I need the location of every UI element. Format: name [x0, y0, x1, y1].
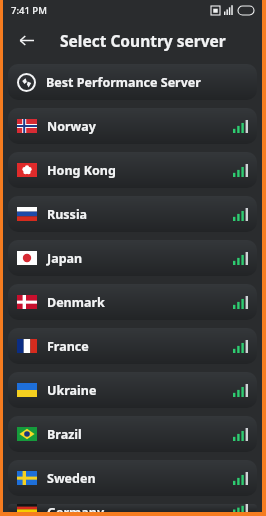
button[interactable]: Back: [13, 27, 39, 53]
button[interactable]: Russia: [8, 196, 257, 232]
button[interactable]: France: [8, 328, 257, 364]
button[interactable]: Hong Kong: [8, 152, 257, 188]
staticText: Best Performance Server: [46, 74, 201, 91]
staticText: Norway: [47, 118, 96, 135]
button[interactable]: Norway: [8, 108, 257, 144]
staticText: Brazil: [47, 426, 82, 443]
staticText: Russia: [47, 206, 88, 223]
staticText: Ukraine: [47, 382, 97, 399]
button[interactable]: Japan: [8, 240, 257, 276]
button[interactable]: Sweden: [8, 460, 257, 496]
staticText: Hong Kong: [47, 162, 116, 179]
button[interactable]: Germany: [8, 504, 257, 512]
staticText: Germany: [47, 504, 105, 512]
button[interactable]: Brazil: [8, 416, 257, 452]
staticText: 7:41 PM: [11, 4, 47, 17]
staticText: France: [47, 338, 89, 355]
staticText: Japan: [47, 250, 83, 267]
button[interactable]: Ukraine: [8, 372, 257, 408]
staticText: Sweden: [47, 470, 96, 487]
staticText: Denmark: [47, 294, 105, 311]
button[interactable]: Best Performance Server: [8, 64, 257, 100]
button[interactable]: Denmark: [8, 284, 257, 320]
staticText: Select Country server: [60, 30, 226, 51]
